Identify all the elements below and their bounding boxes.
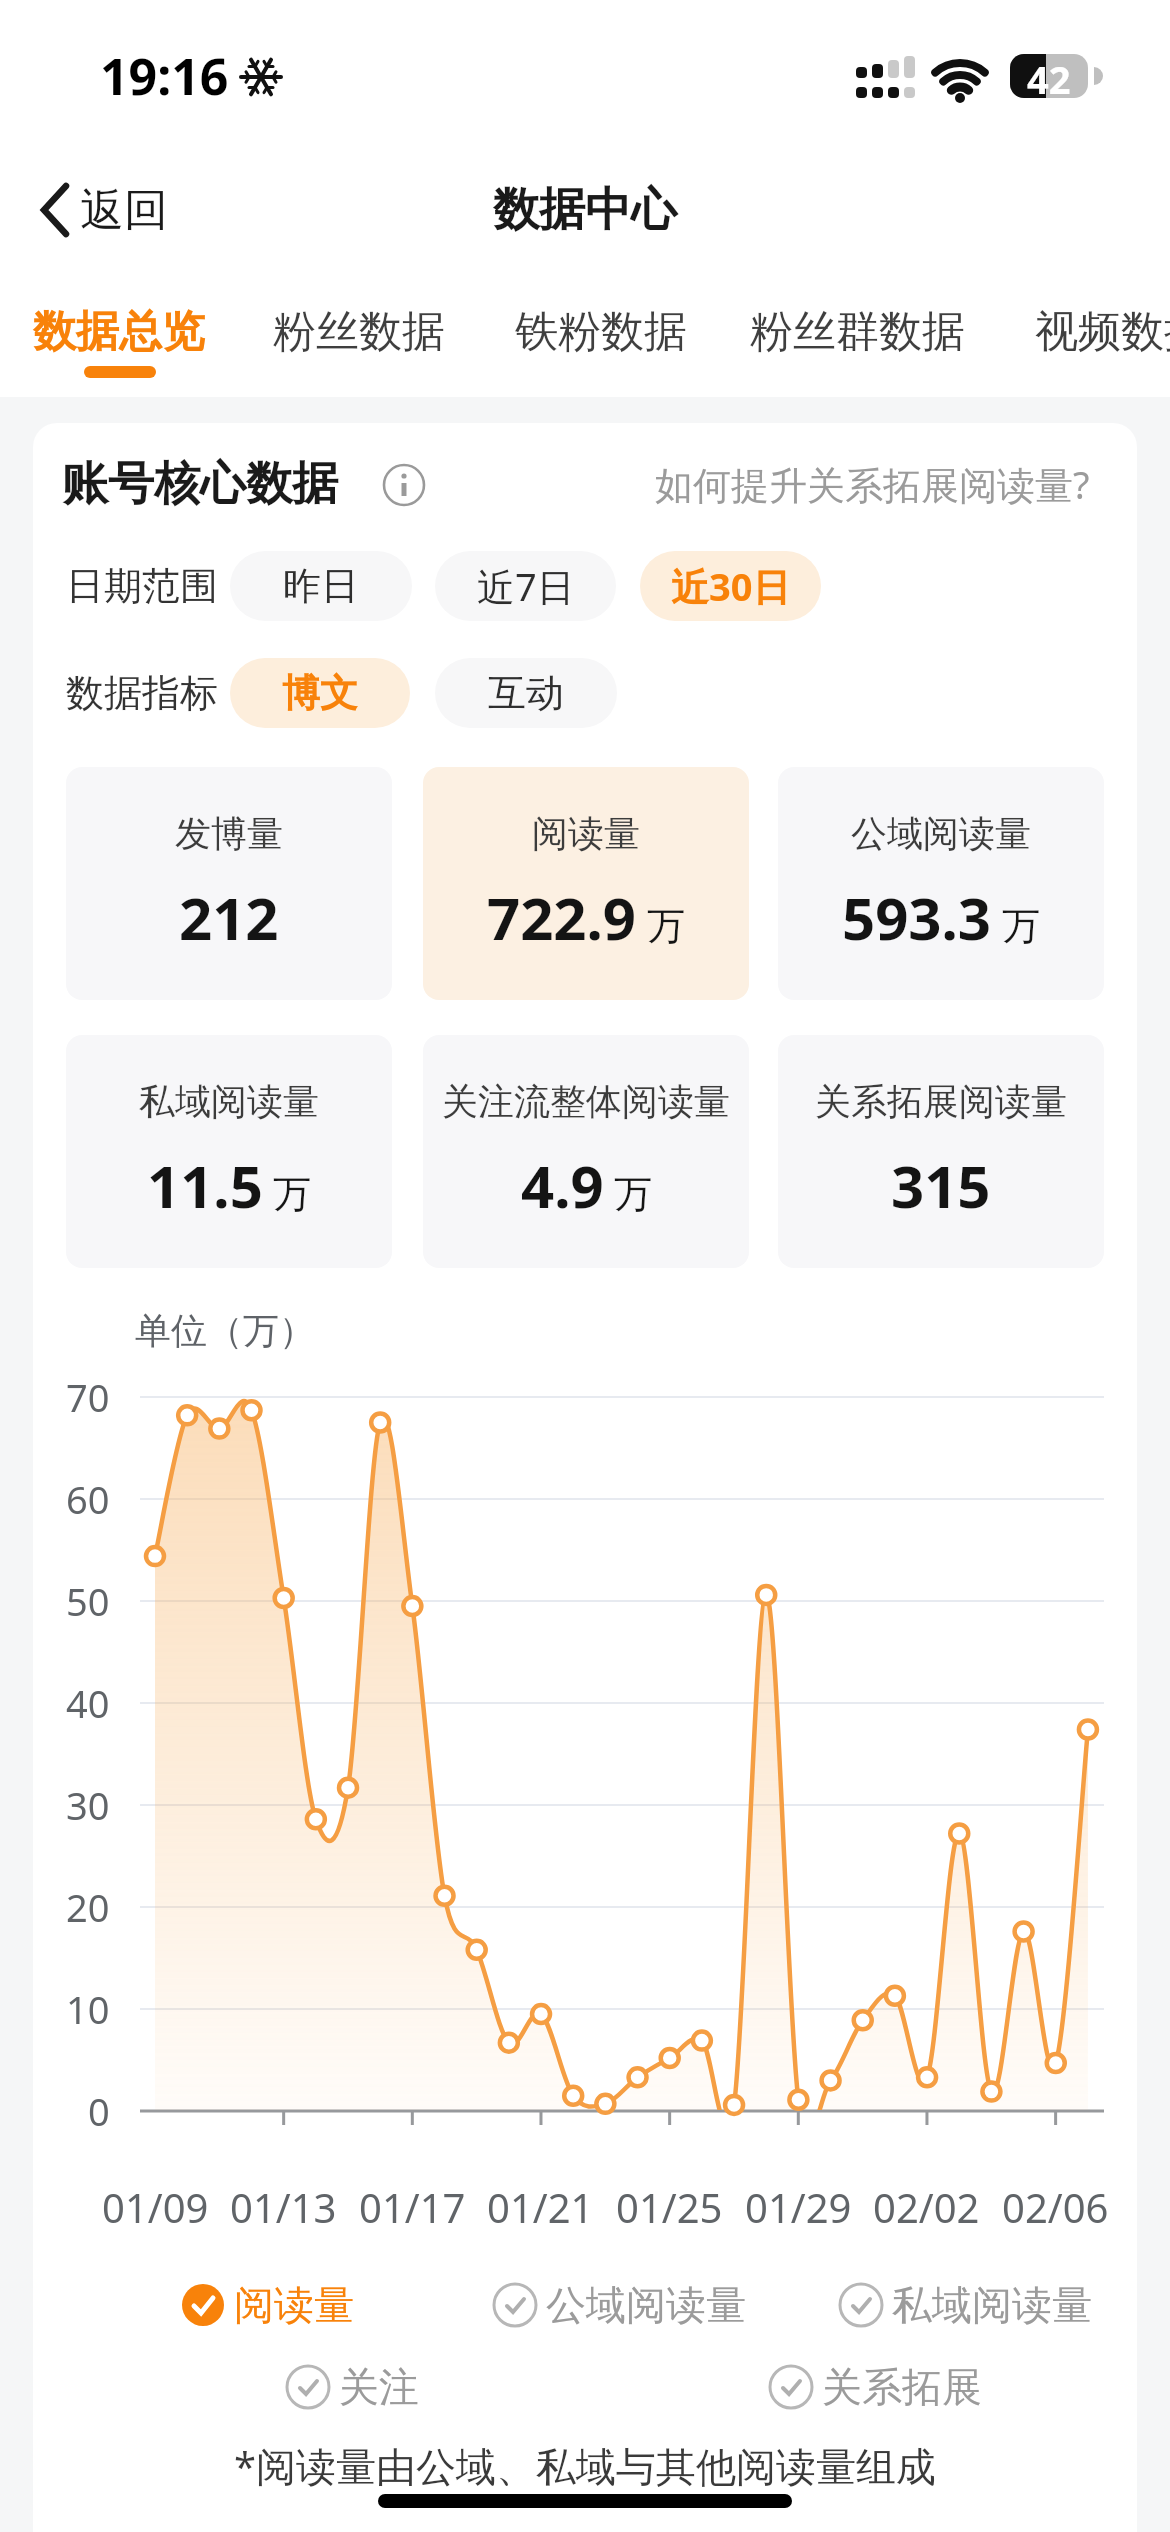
- staticText: 01/25: [616, 2180, 723, 2234]
- staticText: 722.9: [487, 878, 637, 957]
- button[interactable]: 私域阅读量: [66, 1035, 392, 1268]
- staticText: 01/17: [359, 2180, 466, 2234]
- staticText: 10: [66, 1983, 110, 2035]
- staticText: 60: [66, 1473, 110, 1525]
- staticText: 粉丝群数据: [750, 305, 965, 359]
- staticText: 关系拓展阅读量: [815, 1079, 1067, 1124]
- staticText: *阅读量由公域、私域与其他阅读量组成: [234, 2438, 937, 2493]
- staticText: 博文: [282, 669, 358, 717]
- staticText: 4.9: [521, 1146, 604, 1225]
- staticText: 01/13: [230, 2180, 337, 2234]
- staticText: 昨日: [283, 562, 359, 610]
- staticText: 20: [66, 1881, 110, 1933]
- staticText: 70: [66, 1371, 110, 1423]
- button[interactable]: 私域阅读量: [838, 2275, 1092, 2335]
- staticText: 近7日: [477, 560, 575, 612]
- button[interactable]: 阅读量: [180, 2275, 354, 2335]
- staticText: 私域阅读量: [139, 1079, 319, 1124]
- staticText: 公域阅读量: [851, 811, 1031, 856]
- staticText: 01/09: [102, 2180, 209, 2234]
- button[interactable]: 如何提升关系拓展阅读量?: [640, 450, 1090, 518]
- staticText: 账号核心数据: [62, 455, 338, 513]
- button[interactable]: 关注: [285, 2357, 419, 2417]
- button[interactable]: 公域阅读量: [778, 767, 1104, 1000]
- staticText: 数据指标: [66, 669, 218, 717]
- staticText: 互动: [488, 669, 564, 717]
- staticText: 关注: [339, 2362, 419, 2412]
- button[interactable]: 铁粉数据: [515, 292, 687, 372]
- staticText: 发博量: [175, 811, 283, 856]
- staticText: 数据中心: [493, 181, 677, 239]
- staticText: 视频数据: [1035, 305, 1170, 359]
- staticText: 11.5: [147, 1146, 263, 1225]
- button[interactable]: 发博量: [66, 767, 392, 1000]
- staticText: 02/06: [1002, 2180, 1109, 2234]
- staticText: 万: [1002, 902, 1040, 950]
- staticText: 40: [66, 1677, 110, 1729]
- staticText: 日期范围: [66, 562, 218, 610]
- staticText: 593.3: [842, 878, 992, 957]
- staticText: 粉丝数据: [273, 305, 445, 359]
- button[interactable]: 昨日: [230, 551, 412, 621]
- staticText: 30: [66, 1779, 110, 1831]
- staticText: 02/02: [873, 2180, 980, 2234]
- staticText: 近30日: [671, 560, 791, 612]
- staticText: 单位（万）: [135, 1308, 315, 1353]
- button[interactable]: 博文: [230, 658, 410, 728]
- staticText: 返回: [80, 183, 168, 238]
- button[interactable]: 近7日: [435, 551, 616, 621]
- button[interactable]: 数据总览: [33, 292, 205, 372]
- staticText: 01/29: [745, 2180, 852, 2234]
- staticText: 50: [66, 1575, 110, 1627]
- staticText: 万: [647, 902, 685, 950]
- staticText: 19:16: [100, 42, 229, 110]
- staticText: 如何提升关系拓展阅读量?: [655, 458, 1090, 510]
- staticText: 万: [614, 1170, 652, 1218]
- staticText: 铁粉数据: [515, 305, 687, 359]
- staticText: 01/21: [487, 2180, 594, 2234]
- button[interactable]: 公域阅读量: [492, 2275, 746, 2335]
- button[interactable]: [382, 463, 426, 507]
- staticText: 0: [88, 2085, 110, 2137]
- staticText: 万: [273, 1170, 311, 1218]
- button[interactable]: 关系拓展: [768, 2357, 982, 2417]
- staticText: 公域阅读量: [546, 2280, 746, 2330]
- button[interactable]: 关系拓展阅读量: [778, 1035, 1104, 1268]
- staticText: 阅读量: [234, 2280, 354, 2330]
- staticText: 212: [179, 878, 279, 957]
- button[interactable]: 粉丝群数据: [750, 292, 965, 372]
- button[interactable]: 阅读量: [423, 767, 749, 1000]
- button[interactable]: 粉丝数据: [273, 292, 445, 372]
- staticText: 关注流整体阅读量: [442, 1079, 730, 1124]
- button[interactable]: 近30日: [640, 551, 821, 621]
- staticText: 阅读量: [532, 811, 640, 856]
- staticText: 关系拓展: [822, 2362, 982, 2412]
- button[interactable]: 互动: [435, 658, 617, 728]
- staticText: 42: [1027, 53, 1071, 99]
- staticText: 私域阅读量: [892, 2280, 1092, 2330]
- staticText: 315: [891, 1146, 991, 1225]
- button[interactable]: 视频数据: [1035, 292, 1170, 372]
- button[interactable]: 关注流整体阅读量: [423, 1035, 749, 1268]
- button[interactable]: 返回: [36, 178, 186, 242]
- staticText: 数据总览: [33, 305, 205, 359]
